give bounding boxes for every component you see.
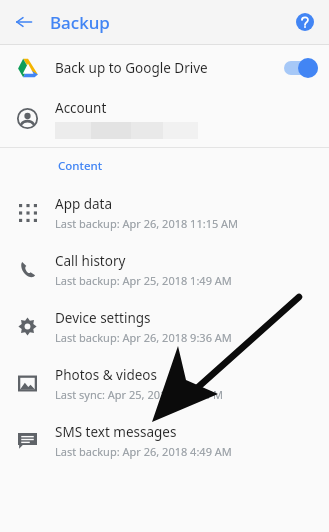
staticText: Backup xyxy=(50,11,110,34)
staticText: Account xyxy=(55,99,107,117)
button[interactable]: Back xyxy=(8,6,40,38)
staticText: SMS text messages xyxy=(55,423,177,441)
staticText: Last backup: Apr 26, 2018 4:49 AM xyxy=(55,444,232,459)
staticText: Last backup: Apr 26, 2018 11:15 AM xyxy=(55,216,239,231)
button[interactable]: Help xyxy=(290,7,320,37)
button[interactable]: SMS text messages xyxy=(0,412,329,469)
staticText: Back up to Google Drive xyxy=(55,59,284,77)
staticText: Last backup: Apr 25, 2018 1:49 AM xyxy=(55,273,232,288)
staticText: Call history xyxy=(55,252,126,270)
staticText: Device settings xyxy=(55,309,151,327)
button[interactable]: App data xyxy=(0,184,329,241)
staticText: Last backup: Apr 26, 2018 9:36 AM xyxy=(55,330,232,345)
button[interactable]: Photos & videos xyxy=(0,355,329,412)
staticText: Photos & videos xyxy=(55,366,157,384)
button[interactable]: Back up to Google Drive toggle xyxy=(284,58,318,78)
button[interactable]: Account xyxy=(0,90,329,147)
button[interactable]: Back up to Google Drive xyxy=(0,45,329,90)
staticText: App data xyxy=(55,195,113,213)
button[interactable]: Call history xyxy=(0,241,329,298)
staticText: Last sync: Apr 25, 2018 10:13 PM xyxy=(55,387,224,402)
button[interactable]: Device settings xyxy=(0,298,329,355)
staticText: Content xyxy=(58,158,103,174)
